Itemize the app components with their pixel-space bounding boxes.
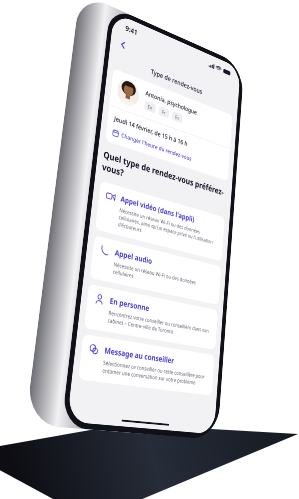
staticText: Rencontrez votre conseiller ou conseillè… (107, 309, 211, 341)
staticText: Message au conseiller (104, 345, 175, 366)
staticText: En (147, 103, 153, 111)
staticText: Changer l'heure du rendez-vous (121, 131, 192, 163)
staticText: Nécessite un réseau Wi-Fi ou des données… (112, 260, 214, 297)
staticText: En personne (109, 295, 150, 314)
staticText: Antonia, psychologue (145, 89, 197, 116)
button[interactable]: En personne (84, 284, 218, 350)
button[interactable]: Back (115, 34, 130, 55)
staticText: Appel audio (114, 247, 153, 266)
staticText: Fr (162, 108, 166, 116)
staticText: Sélectionnez ce conseiller ou cette cons… (102, 358, 207, 387)
button[interactable]: En (144, 100, 156, 114)
button[interactable]: Appel audio (89, 235, 221, 305)
button[interactable]: Es (171, 111, 183, 124)
button[interactable]: Appel vidéo (dans l'appli) (95, 181, 225, 262)
staticText: 9:41 (125, 23, 138, 38)
staticText: Type de rendez-vous (150, 67, 203, 96)
button[interactable]: Message au conseiller (78, 334, 215, 396)
staticText: Jeudi 14 février, de 15 h à 16 h (114, 114, 188, 148)
button[interactable]: Changer l'heure du rendez-vous (112, 128, 192, 163)
staticText: Quel type de rendez-vous préférez- vous? (101, 148, 224, 209)
staticText: Nécessite un réseau Wi-Fi ou des données… (118, 206, 218, 253)
staticText: Es (175, 113, 180, 121)
button[interactable]: Fr (158, 106, 169, 119)
staticText: Appel vidéo (dans l'appli) (120, 193, 195, 224)
